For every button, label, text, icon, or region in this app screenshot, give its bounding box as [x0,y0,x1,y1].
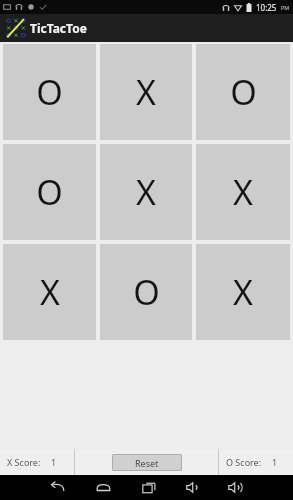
staticText: O Score: [226,456,262,468]
staticText: TicTacToe [30,20,87,36]
staticText: 1 [272,456,278,468]
staticText: X Score: [7,456,41,468]
staticText: X [233,169,253,215]
button[interactable]: X [196,144,290,240]
button[interactable]: X [196,244,290,340]
staticText: X [40,269,60,315]
button[interactable]: O [196,44,290,140]
staticText: X [136,169,156,215]
staticText: O [230,69,257,115]
staticText: X [233,269,253,315]
staticText: Reset [135,457,159,469]
staticText: O [36,169,63,215]
button[interactable]: X [3,244,96,340]
button[interactable]: Back [40,475,74,500]
staticText: PM [281,4,290,11]
staticText: 10:25 [256,2,277,13]
button[interactable]: O [100,244,192,340]
button[interactable]: X [100,144,192,240]
staticText: X [136,69,156,115]
button[interactable]: O [3,44,96,140]
button[interactable]: Home [86,475,120,500]
button[interactable]: Reset [112,454,182,471]
staticText: 1 [51,456,57,468]
staticText: O [36,69,63,115]
button[interactable]: Volume down [176,475,210,500]
button[interactable]: Recent apps [132,475,166,500]
button[interactable]: Volume up [218,475,252,500]
staticText: O [133,269,160,315]
button[interactable]: O [3,144,96,240]
button[interactable]: X [100,44,192,140]
